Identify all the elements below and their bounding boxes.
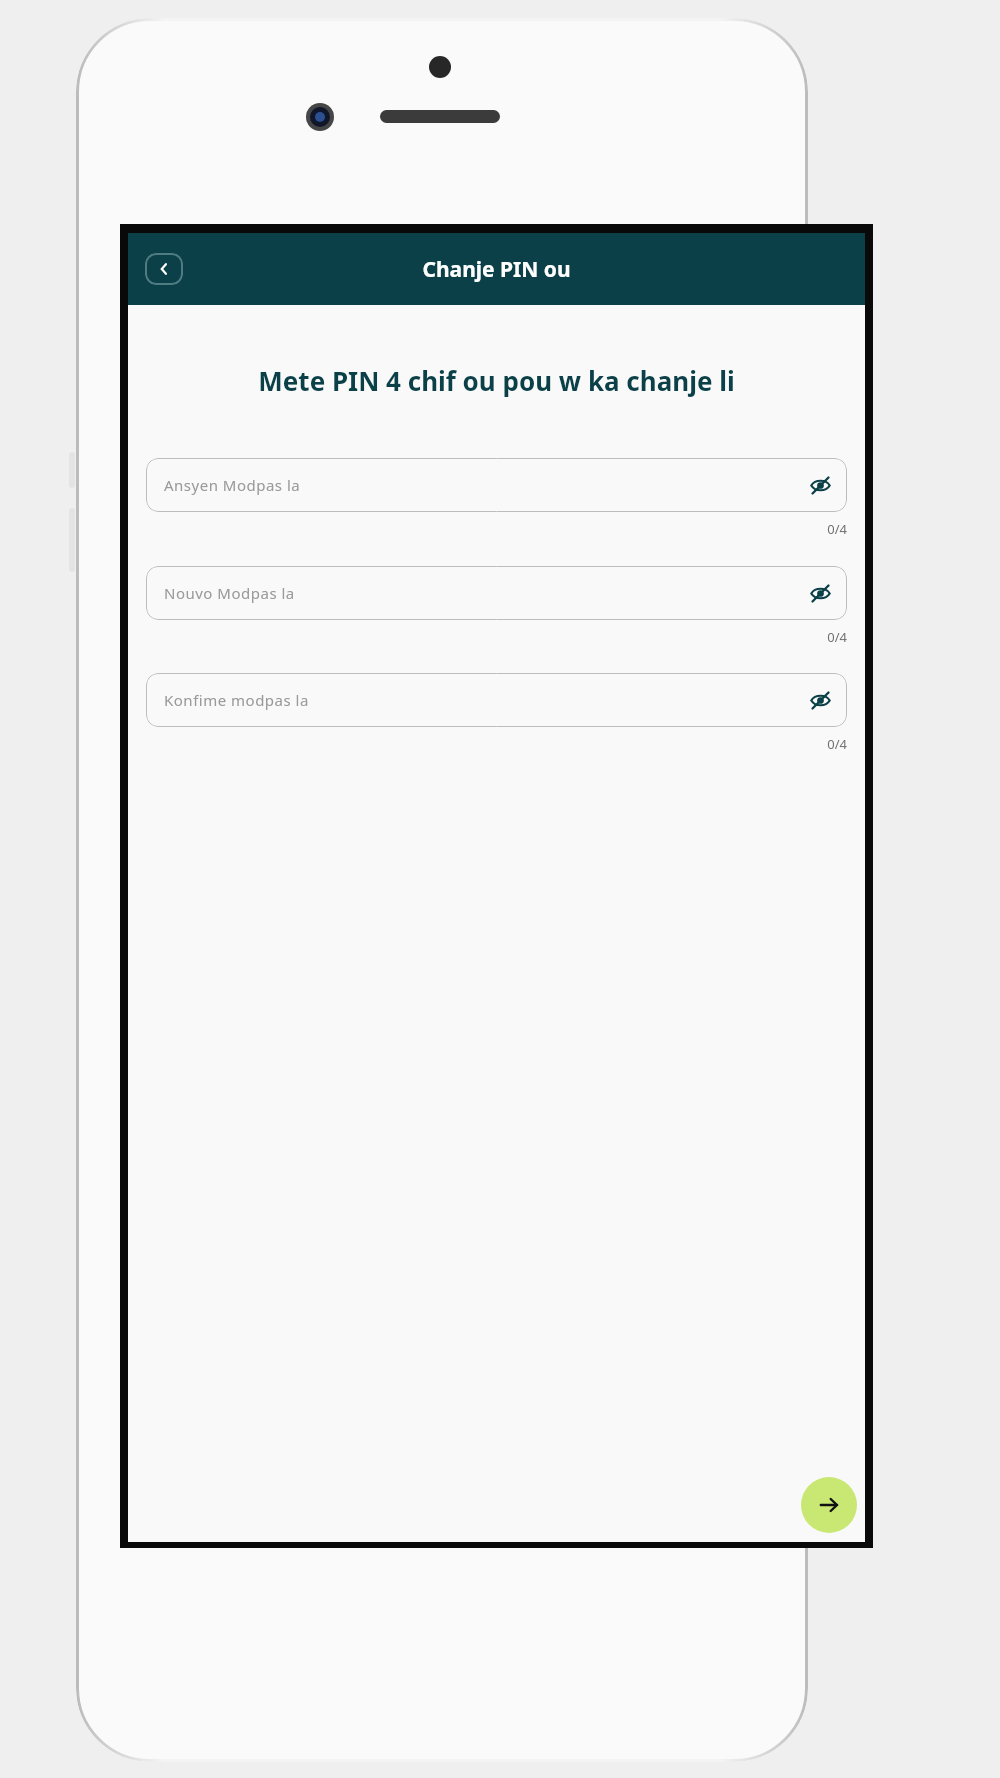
button[interactable]: Next [801, 1477, 857, 1533]
button[interactable]: Ansyen Modpas la [146, 458, 847, 512]
staticText: Mete PIN 4 chif ou pou w ka chanje li [144, 363, 849, 398]
staticText: Nouvo Modpas la [164, 583, 295, 603]
staticText: 0/4 [146, 735, 847, 753]
button[interactable]: Konfime modpas la [146, 673, 847, 727]
button[interactable]: Back [145, 253, 183, 285]
staticText: Ansyen Modpas la [164, 475, 301, 495]
staticText: 0/4 [146, 520, 847, 538]
staticText: Chanje PIN ou [422, 255, 571, 284]
button[interactable]: Nouvo Modpas la [146, 566, 847, 620]
button[interactable]: Show password [803, 576, 837, 610]
staticText: Konfime modpas la [164, 690, 309, 710]
button[interactable]: Show password [803, 683, 837, 717]
staticText: 0/4 [146, 628, 847, 646]
button[interactable]: Show password [803, 468, 837, 502]
